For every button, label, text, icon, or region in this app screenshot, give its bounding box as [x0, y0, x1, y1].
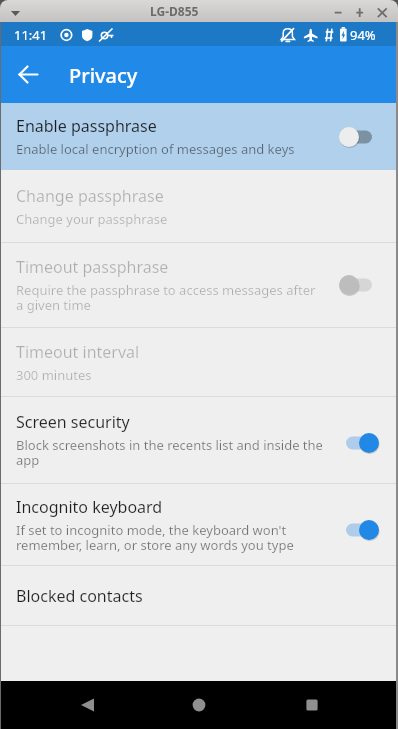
staticText: 300 minutes [16, 366, 92, 384]
button[interactable] [304, 697, 320, 713]
staticText: Enable local encryption of messages and … [16, 140, 295, 158]
staticText: LG-D855 [150, 3, 199, 19]
staticText: Require the passphrase to access message… [16, 281, 316, 314]
button[interactable]: Timeout interval [0, 328, 398, 396]
staticText: Privacy [69, 62, 138, 89]
button[interactable]: Enable passphrase [0, 103, 398, 170]
staticText: 11:41 [14, 26, 48, 44]
button[interactable]: Timeout passphrase [0, 243, 398, 327]
staticText: Timeout interval [16, 341, 140, 363]
staticText: Change your passphrase [16, 210, 168, 228]
staticText: 94% [350, 26, 376, 44]
button[interactable]: Incognito keyboard [0, 484, 398, 565]
staticText: Screen security [16, 411, 130, 433]
staticText: Blocked contacts [16, 585, 143, 607]
button[interactable] [79, 697, 95, 713]
button[interactable]: Change passphrase [0, 170, 398, 242]
button[interactable] [191, 697, 207, 713]
button[interactable]: Blocked contacts [0, 566, 398, 625]
staticText: Change passphrase [16, 185, 164, 207]
staticText: Enable passphrase [16, 115, 157, 137]
staticText: Timeout passphrase [16, 256, 169, 278]
button[interactable] [9, 55, 49, 95]
staticText: Incognito keyboard [16, 496, 163, 518]
staticText: If set to incognito mode, the keyboard w… [16, 521, 294, 554]
staticText: Block screenshots in the recents list an… [16, 436, 322, 469]
button[interactable]: Screen security [0, 397, 398, 483]
